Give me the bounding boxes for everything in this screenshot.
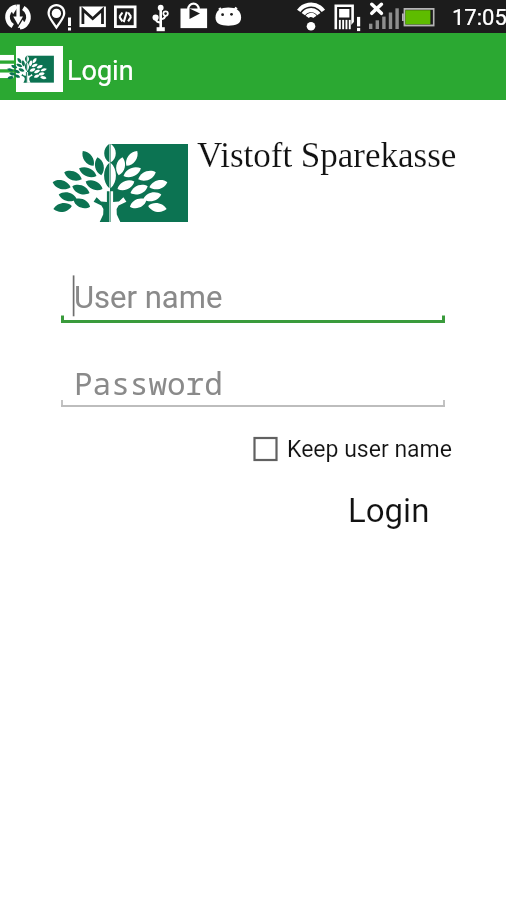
staticText: Login: [67, 55, 134, 87]
staticText: Login: [348, 491, 430, 530]
staticText: Vistoft Sparekasse: [197, 136, 457, 175]
button[interactable]: Keep user name: [250, 430, 452, 468]
staticText: Keep user name: [287, 436, 452, 463]
button[interactable]: Open navigation menu: [0, 33, 16, 100]
button[interactable]: User name: [61, 272, 445, 323]
staticText: 17:05: [452, 5, 506, 31]
button[interactable]: Vistoft Sparekasse: [16, 46, 63, 92]
staticText: Password: [74, 362, 223, 404]
button[interactable]: Password: [61, 356, 445, 407]
button[interactable]: Login: [333, 483, 445, 538]
staticText: User name: [74, 279, 223, 315]
